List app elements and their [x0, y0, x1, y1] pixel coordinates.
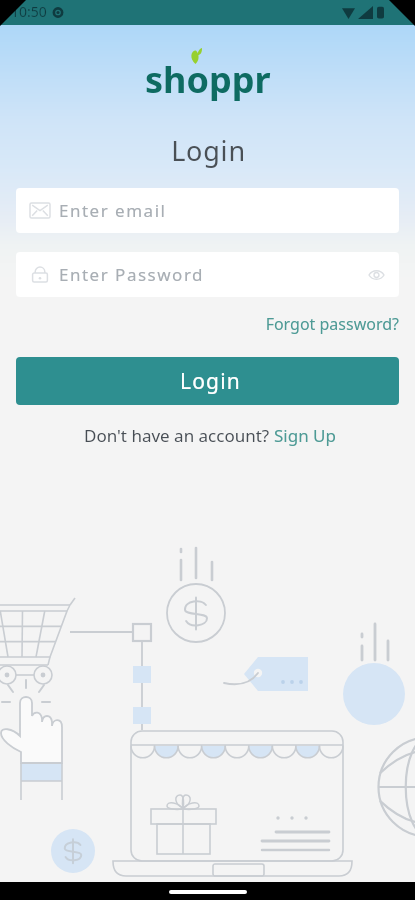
button[interactable]: Enter Password — [16, 252, 399, 297]
other: Show password — [368, 269, 385, 281]
staticText: 10:50 — [11, 2, 47, 21]
button[interactable]: Enter email — [16, 188, 399, 233]
staticText: Enter email — [59, 199, 167, 222]
staticText: Forgot password? — [0, 313, 399, 335]
staticText: Enter Password — [59, 263, 205, 286]
staticText: shoppr — [145, 55, 271, 101]
staticText: Login — [1, 132, 415, 169]
button[interactable]: Login — [16, 357, 399, 405]
button[interactable]: Forgot password? — [0, 313, 415, 335]
staticText: Login — [180, 367, 242, 396]
staticText: Don't have an account? — [84, 424, 274, 447]
button[interactable]: Sign Up — [274, 424, 336, 447]
